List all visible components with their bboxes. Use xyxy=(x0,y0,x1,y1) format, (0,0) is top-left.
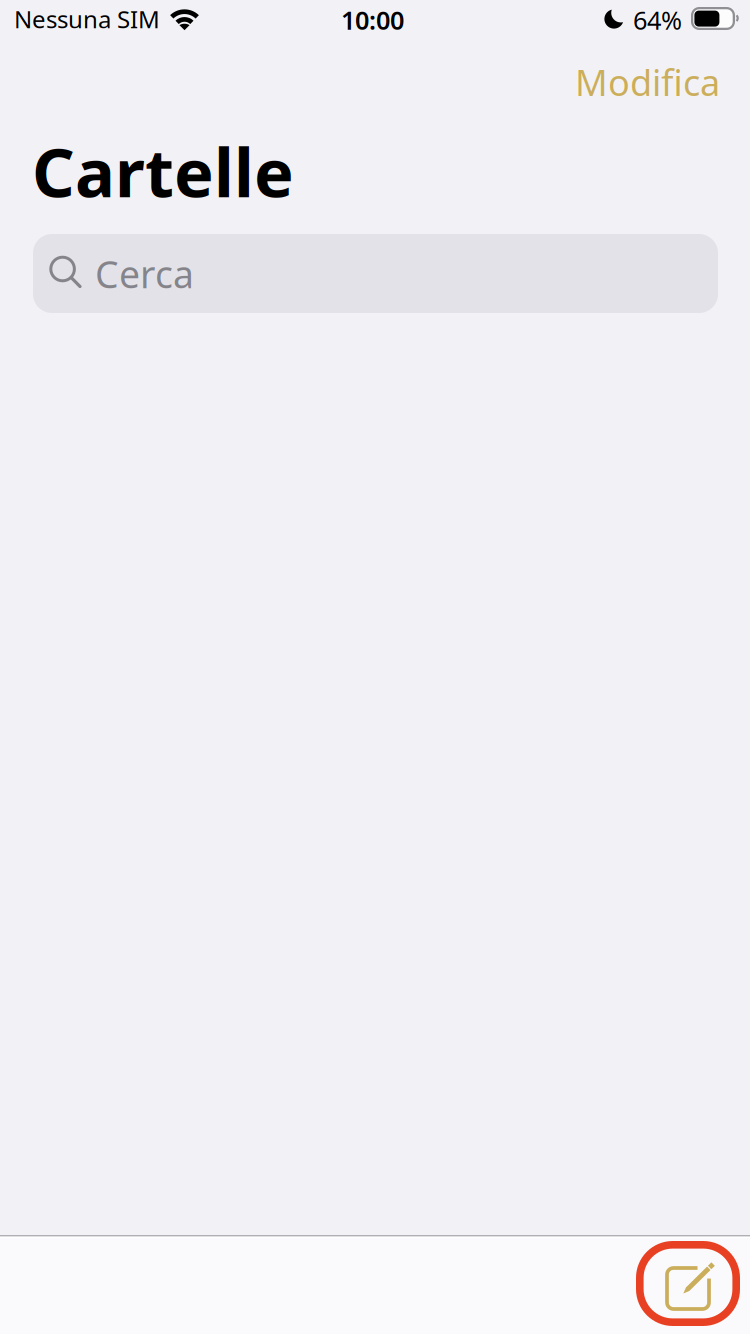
staticText: 10:00 xyxy=(341,3,404,37)
staticText: Cartelle xyxy=(32,127,294,215)
button[interactable]: Nuova nota xyxy=(633,1235,749,1331)
button[interactable]: Cerca xyxy=(33,234,718,313)
button[interactable]: Modifica xyxy=(530,54,720,110)
staticText: Modifica xyxy=(575,58,720,106)
staticText: Cerca xyxy=(95,249,194,299)
staticText: Nessuna SIM xyxy=(14,3,160,35)
staticText: 64% xyxy=(633,3,682,37)
